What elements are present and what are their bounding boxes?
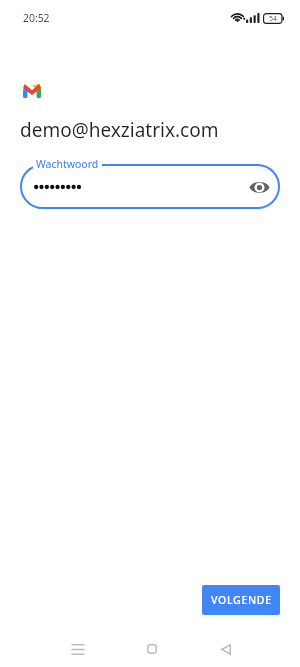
staticText: 20:52 <box>23 11 50 25</box>
staticText: Wachtwoord <box>36 157 99 171</box>
staticText: 54 <box>269 14 278 24</box>
button[interactable]: VOLGENDE <box>202 585 280 615</box>
button[interactable]: Home <box>132 633 172 665</box>
button[interactable]: Show password <box>246 174 272 200</box>
staticText: VOLGENDE <box>211 593 272 607</box>
button[interactable]: Back <box>206 633 246 665</box>
button[interactable]: Recent apps <box>58 633 98 665</box>
button[interactable] <box>20 164 280 209</box>
staticText: demo@hexziatrix.com <box>20 117 219 143</box>
